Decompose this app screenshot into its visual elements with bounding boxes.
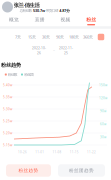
button[interactable]: 360天 [81,34,95,40]
staticText: 粉丝 [86,17,96,23]
staticText: 粉丝趋势 [1,62,21,68]
staticText: 25 [64,51,68,55]
staticText: 2022-10- [32,46,46,50]
staticText: 张兰·俏生活 [13,1,39,9]
staticText: 120w [99,96,107,100]
staticText: 11-15 [70,150,79,154]
staticText: 粉丝趋势 [18,168,38,173]
staticText: 直播 [35,17,45,23]
staticText: 15天 [28,34,36,40]
button[interactable]: 直播 [27,17,53,25]
button[interactable]: 概览 [1,17,27,25]
staticText: 7天 [15,34,21,40]
staticText: 2022-11- [59,46,73,50]
staticText: 360天 [83,34,93,40]
button[interactable]: 2022-10- [32,46,46,55]
button[interactable]: 粉丝 [78,17,104,25]
staticText: 粉丝数 [8,72,17,77]
button[interactable]: 90天 [53,34,67,40]
button[interactable]: 7天 [11,34,25,40]
staticText: 530.7w [33,8,45,13]
staticText: 总粉丝数 [20,8,32,13]
staticText: 5.35w [3,95,12,99]
staticText: 带货口碑 [46,8,58,13]
staticText: 粉丝团趋势 [69,168,94,173]
staticText: 150w [99,83,107,87]
button[interactable]: 粉丝趋势 [6,164,51,177]
staticText: 10-26 [18,150,27,154]
staticText: 90w [100,109,106,113]
staticText: 5.15w [3,143,12,147]
button[interactable]: 15天 [25,34,39,40]
staticText: 90天 [56,34,64,40]
staticText: 180天 [69,34,79,40]
staticText: 5.40w [3,83,12,87]
staticText: 概览 [9,17,19,23]
staticText: 30w [100,135,106,139]
staticText: 26 [37,51,41,55]
staticText: 粉丝团 [24,72,33,77]
staticText: 4.87分 [59,8,70,13]
button[interactable]: 粉丝团趋势 [58,164,105,177]
staticText: 11-22 [87,150,96,154]
staticText: 5.30w [3,107,12,111]
staticText: 11-08 [52,150,61,154]
staticText: 60w [100,122,106,126]
staticText: 30天 [42,34,50,40]
staticText: 5.25w [3,119,12,123]
staticText: 11-01 [35,150,44,154]
button[interactable]: 30天 [39,34,53,40]
staticText: 视频 [60,17,70,23]
button[interactable]: 180天 [67,34,81,40]
staticText: ~ [53,48,55,53]
staticText: 5.20w [3,131,12,135]
button[interactable]: 视频 [52,17,78,25]
button[interactable]: 2022-11- [59,46,73,55]
